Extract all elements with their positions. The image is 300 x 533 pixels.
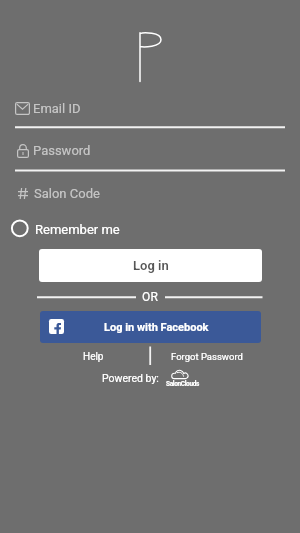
button[interactable]: Email ID <box>15 96 285 128</box>
staticText: Help <box>83 351 104 363</box>
button[interactable]: Help <box>71 346 116 367</box>
staticText: Salon Code <box>34 186 100 201</box>
staticText: Log in <box>133 258 169 273</box>
staticText: Email ID <box>33 101 81 116</box>
button[interactable]: Log in <box>39 249 262 282</box>
staticText: Log in with Facebook <box>104 321 209 334</box>
button[interactable]: Remember me <box>10 217 122 242</box>
staticText: Remember me <box>35 222 120 237</box>
button[interactable]: Password <box>15 139 285 171</box>
staticText: Password <box>33 143 91 158</box>
button[interactable]: Salon Code <box>15 182 285 212</box>
staticText: Powered by: <box>102 372 159 384</box>
button[interactable]: Forgot Password <box>166 346 247 367</box>
staticText: OR <box>142 290 159 304</box>
staticText: Forgot Password <box>171 351 243 362</box>
staticText: SalonClouds <box>166 380 199 388</box>
button[interactable]: Log in with Facebook <box>40 311 261 343</box>
